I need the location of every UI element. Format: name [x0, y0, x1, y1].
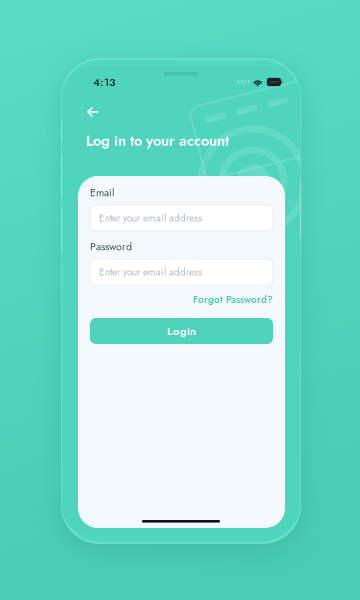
- staticText: Log in to your account: [86, 130, 229, 151]
- staticText: 4:13: [93, 74, 116, 90]
- staticText: Email: [90, 185, 114, 200]
- button[interactable]: Back: [76, 99, 110, 125]
- staticText: Password: [90, 239, 132, 254]
- button[interactable]: Login: [90, 318, 273, 344]
- staticText: Forgot Password?: [193, 292, 273, 307]
- staticText: Login: [167, 323, 196, 339]
- staticText: Enter your email address: [99, 211, 202, 225]
- button[interactable]: Forgot Password?: [90, 292, 273, 307]
- staticText: Enter your email address: [99, 265, 202, 279]
